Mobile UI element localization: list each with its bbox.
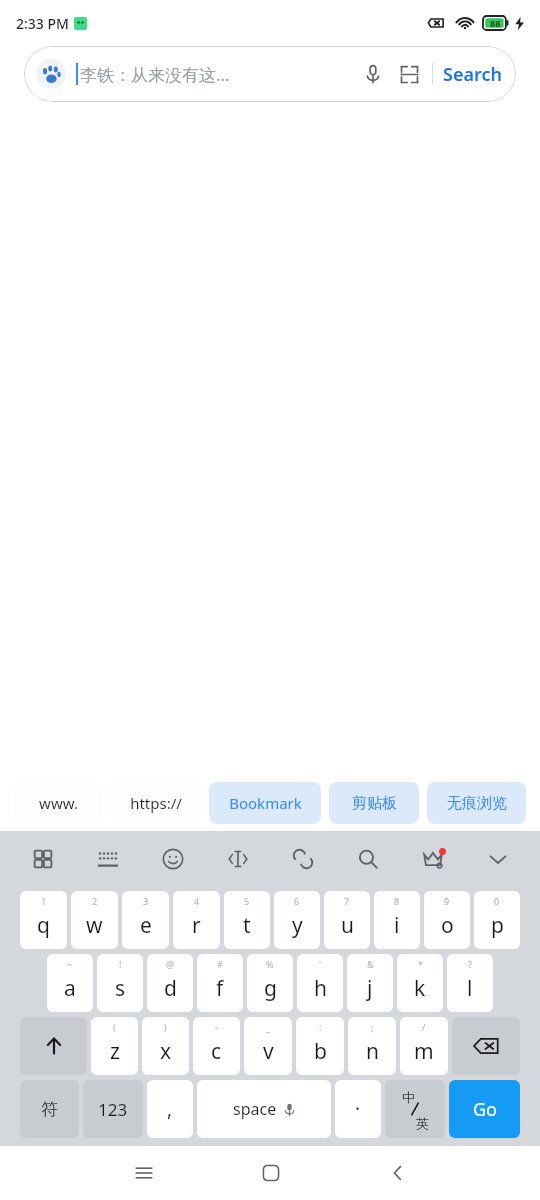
button[interactable]: 9 xyxy=(424,891,470,949)
button[interactable]: _ xyxy=(244,1017,292,1075)
staticText: 2 xyxy=(92,895,98,907)
button[interactable]: 无痕浏览 xyxy=(427,782,526,824)
staticText: v xyxy=(263,1037,274,1066)
staticText: 无痕浏览 xyxy=(447,794,507,813)
staticText: ! xyxy=(119,958,122,970)
staticText: ) xyxy=(164,1021,167,1033)
staticText: f xyxy=(216,974,224,1003)
staticText: 9 xyxy=(444,895,450,907)
staticText: x xyxy=(160,1037,172,1066)
staticText: 123 xyxy=(98,1098,128,1121)
button[interactable]: ? xyxy=(447,954,493,1012)
button[interactable]: 剪贴板 xyxy=(329,782,419,824)
button[interactable]: # xyxy=(197,954,243,1012)
button[interactable]: Home xyxy=(207,1146,334,1200)
button[interactable]: Scan code xyxy=(394,59,424,89)
button[interactable]: ( xyxy=(91,1017,138,1075)
staticText: w xyxy=(86,911,103,940)
button[interactable]: , xyxy=(147,1080,193,1138)
button[interactable]: Hide keyboard xyxy=(478,839,518,879)
button[interactable]: 123 xyxy=(83,1080,143,1138)
button[interactable]: & xyxy=(347,954,393,1012)
staticText: www. xyxy=(39,793,78,813)
button[interactable]: 3 xyxy=(122,891,169,949)
staticText: a xyxy=(64,974,76,1003)
staticText: n xyxy=(366,1037,379,1066)
button[interactable]: Keyboard layouts xyxy=(23,839,63,879)
button[interactable]: 中 xyxy=(385,1080,445,1138)
button[interactable]: 7 xyxy=(324,891,370,949)
staticText: & xyxy=(367,958,374,970)
button[interactable]: ' xyxy=(297,954,343,1012)
button[interactable]: Keyboard xyxy=(88,839,128,879)
button[interactable]: 李铁：从来没有这… xyxy=(24,46,516,102)
staticText: 7 xyxy=(344,895,350,907)
staticText: p xyxy=(491,911,504,940)
staticText: 88 xyxy=(490,17,501,29)
staticText: i xyxy=(394,911,400,940)
button[interactable]: Recent apps xyxy=(80,1146,207,1200)
button[interactable]: / xyxy=(400,1017,448,1075)
button[interactable]: Voice search xyxy=(358,59,388,89)
staticText: - xyxy=(215,1021,218,1033)
staticText: ? xyxy=(468,958,472,970)
button[interactable]: Premium xyxy=(413,839,453,879)
button[interactable]: Emoji xyxy=(153,839,193,879)
staticText: 4 xyxy=(194,895,200,907)
staticText: ; xyxy=(371,1021,374,1033)
button[interactable]: Backspace xyxy=(452,1017,520,1075)
staticText: 英 xyxy=(416,1115,429,1131)
button[interactable]: 0 xyxy=(474,891,520,949)
button[interactable]: @ xyxy=(147,954,193,1012)
staticText: 符 xyxy=(41,1099,58,1120)
button[interactable]: www. xyxy=(14,782,103,824)
button[interactable]: ; xyxy=(348,1017,396,1075)
staticText: d xyxy=(164,974,177,1003)
button[interactable]: Back xyxy=(334,1146,461,1200)
button[interactable]: https:// xyxy=(111,782,201,824)
staticText: # xyxy=(217,958,223,970)
staticText: Search xyxy=(443,62,502,87)
button[interactable]: Search xyxy=(443,62,502,87)
button[interactable]: 8 xyxy=(374,891,420,949)
button[interactable]: ) xyxy=(142,1017,189,1075)
staticText: 6 xyxy=(294,895,300,907)
button[interactable]: 6 xyxy=(274,891,320,949)
button[interactable]: Shift xyxy=(20,1017,87,1075)
button[interactable]: ! xyxy=(97,954,143,1012)
button[interactable]: Search xyxy=(348,839,388,879)
staticText: s xyxy=(115,974,126,1003)
button[interactable]: 4 xyxy=(173,891,220,949)
button[interactable]: 5 xyxy=(224,891,270,949)
button[interactable]: % xyxy=(247,954,293,1012)
button[interactable]: space xyxy=(197,1080,331,1138)
button[interactable]: * xyxy=(397,954,443,1012)
staticText: 0 xyxy=(494,895,500,907)
staticText: h xyxy=(314,974,327,1003)
button[interactable]: Clipboard link xyxy=(283,839,323,879)
button[interactable]: Bookmark xyxy=(209,782,321,824)
staticText: ( xyxy=(113,1021,116,1033)
staticText: / xyxy=(422,1021,426,1033)
button[interactable]: : xyxy=(296,1017,344,1075)
staticText: % xyxy=(266,958,274,970)
button[interactable]: - xyxy=(193,1017,240,1075)
staticText: b xyxy=(314,1037,327,1066)
staticText: e xyxy=(140,911,152,940)
staticText: c xyxy=(211,1037,222,1066)
staticText: · xyxy=(355,1096,361,1122)
staticText: 8 xyxy=(394,895,400,907)
button[interactable]: Go xyxy=(449,1080,520,1138)
button[interactable]: 2 xyxy=(71,891,118,949)
staticText: r xyxy=(192,911,201,940)
staticText: * xyxy=(418,958,423,970)
staticText: space xyxy=(233,1098,277,1120)
button[interactable]: · xyxy=(335,1080,381,1138)
button[interactable]: 1 xyxy=(20,891,67,949)
staticText: ~ xyxy=(67,958,73,970)
staticText: 3 xyxy=(143,895,149,907)
staticText: 中 xyxy=(402,1089,415,1105)
button[interactable]: ~ xyxy=(47,954,93,1012)
button[interactable]: Text cursor xyxy=(218,839,258,879)
button[interactable]: 符 xyxy=(20,1080,79,1138)
